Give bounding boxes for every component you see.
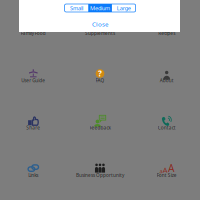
staticText: FAQ [95, 77, 104, 84]
button[interactable]: ? [67, 55, 133, 99]
staticText: ? [98, 21, 102, 31]
staticText: a [159, 167, 162, 175]
staticText: Business Opportunity [76, 172, 124, 178]
button[interactable]: Share [0, 102, 66, 146]
button[interactable]: Large [112, 4, 136, 12]
staticText: Close [92, 20, 108, 28]
button[interactable]: ? [67, 8, 133, 52]
staticText: Family Food [21, 30, 46, 36]
staticText: A [168, 161, 174, 175]
staticText: Feedback [89, 125, 110, 131]
staticText: Recipes [158, 30, 175, 36]
button[interactable]: Links [0, 150, 66, 194]
button[interactable]: User Guide [0, 55, 66, 99]
staticText: Large [117, 4, 131, 12]
button[interactable]: Feedback [67, 102, 133, 146]
button[interactable]: Close [83, 19, 117, 28]
button[interactable]: Medium [88, 4, 112, 12]
button[interactable]: a [134, 150, 200, 194]
staticText: User Guide [21, 77, 45, 84]
staticText: ? [98, 68, 102, 79]
button[interactable]: Small [64, 4, 88, 12]
staticText: Small [70, 4, 83, 12]
staticText: About [160, 77, 174, 84]
staticText: Font Size [157, 172, 177, 178]
staticText: Links [28, 172, 38, 178]
staticText: A [163, 165, 168, 175]
button[interactable]: Contact [134, 102, 200, 146]
staticText: Contact [158, 125, 176, 131]
staticText: Supplements [85, 30, 115, 36]
staticText: Share [26, 125, 40, 131]
staticText: Medium [90, 4, 110, 12]
button[interactable]: Family Food [0, 8, 66, 52]
button[interactable]: Business Opportunity [67, 150, 133, 194]
button[interactable]: Recipes [134, 8, 200, 52]
button[interactable]: About [134, 55, 200, 99]
